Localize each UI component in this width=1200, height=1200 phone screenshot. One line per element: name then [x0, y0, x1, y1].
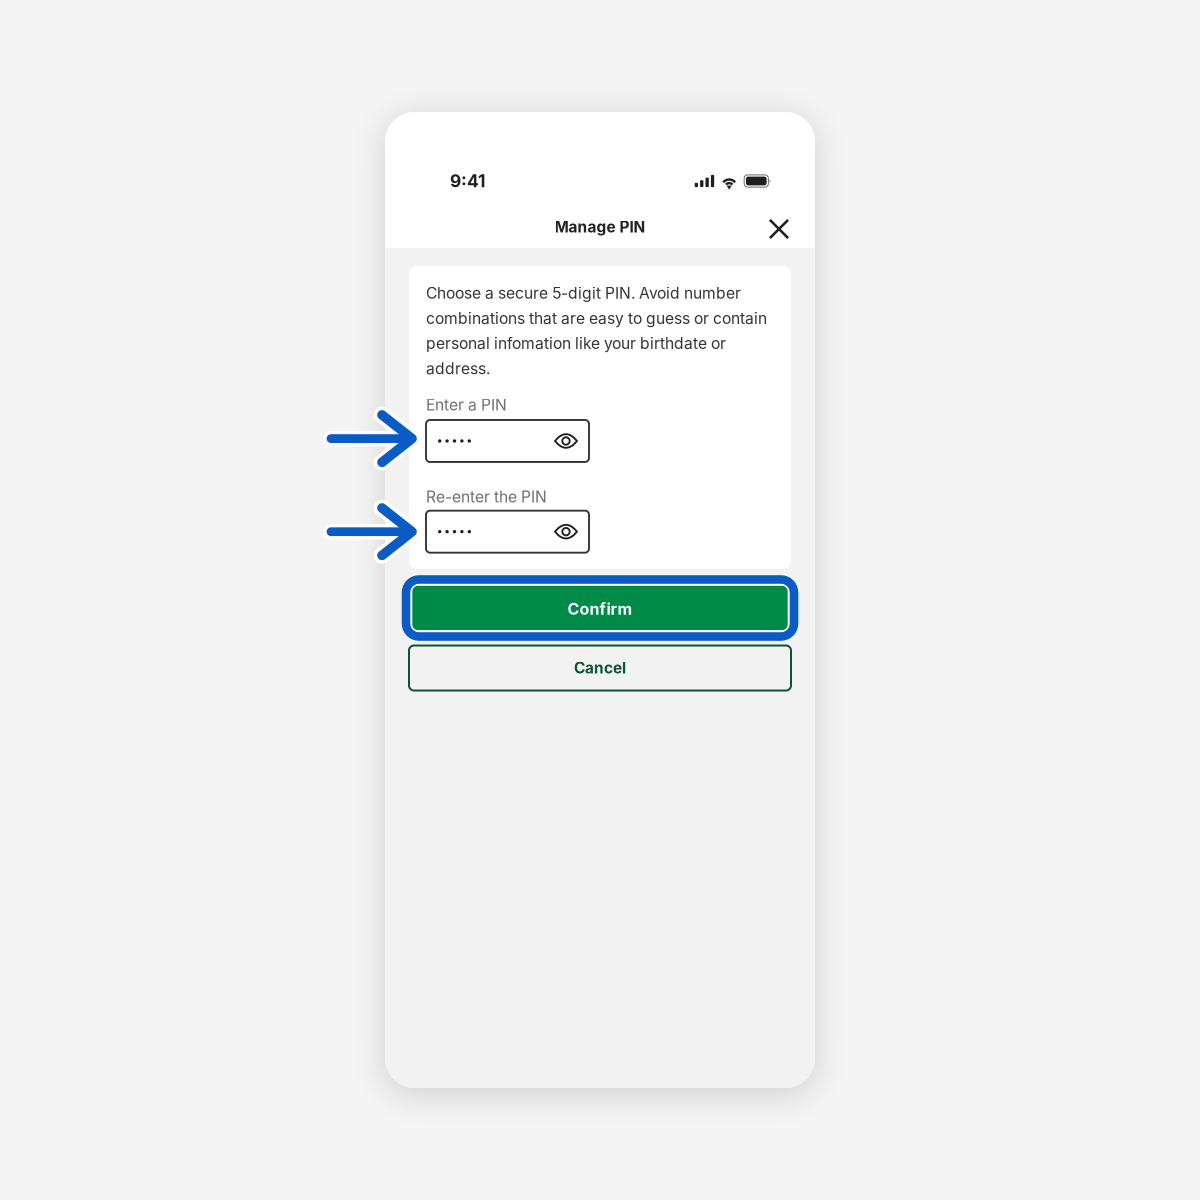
staticText: Enter a PIN	[426, 395, 507, 414]
staticText: Re-enter the PIN	[426, 487, 547, 506]
button[interactable]: Cancel	[409, 645, 791, 690]
button[interactable]: Close	[760, 208, 798, 246]
staticText: Confirm	[567, 599, 632, 619]
staticText: Choose a secure 5-digit PIN. Avoid numbe…	[426, 284, 767, 378]
button[interactable]: PIN entry field	[426, 511, 589, 553]
staticText: Cancel	[574, 659, 626, 677]
staticText: 9:41	[450, 170, 485, 191]
button[interactable]: PIN entry field	[426, 420, 589, 462]
button[interactable]: Confirm	[409, 584, 791, 630]
staticText: Manage PIN	[554, 218, 645, 236]
